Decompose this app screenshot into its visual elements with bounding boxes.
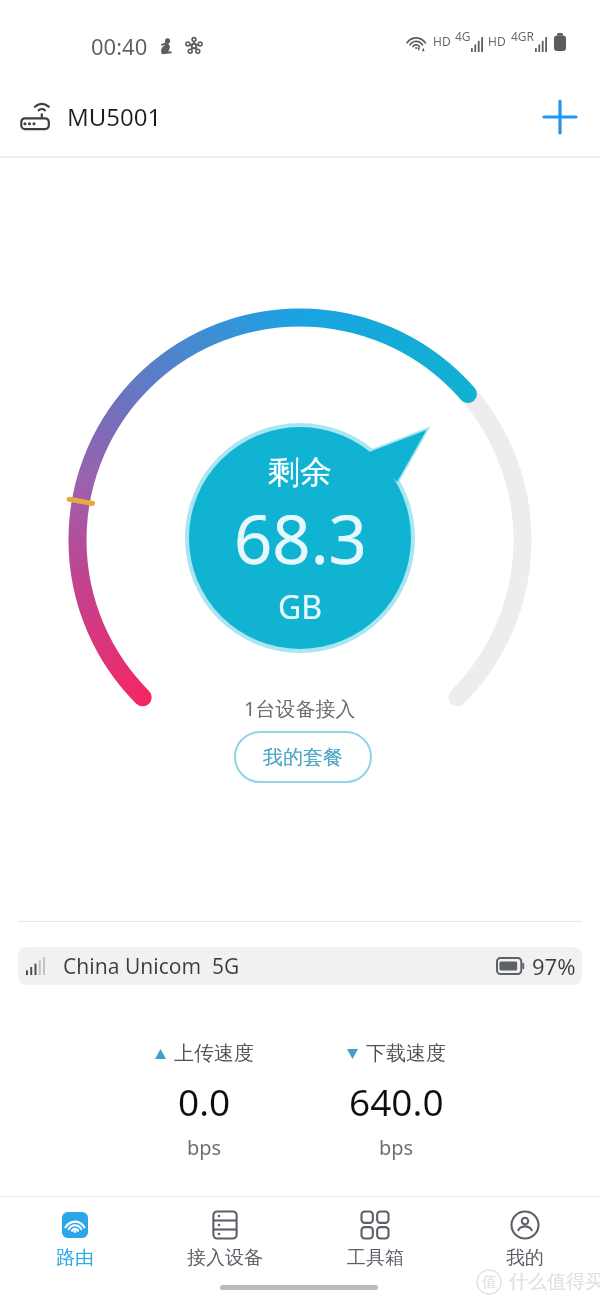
staticText: 剩余	[268, 452, 332, 492]
staticText: 值	[482, 1273, 497, 1292]
staticText: 下载速度	[366, 1041, 446, 1066]
staticText: 什么值得买	[509, 1270, 600, 1294]
staticText: 上传速度	[174, 1041, 254, 1066]
staticText: HD	[488, 33, 506, 49]
button[interactable]: 接入设备	[150, 1197, 300, 1270]
button[interactable]: 路由	[0, 1197, 150, 1270]
button[interactable]: 我的	[450, 1197, 600, 1270]
staticText: 4G	[455, 28, 471, 44]
staticText: 路由	[56, 1246, 94, 1270]
button[interactable]: 工具箱	[300, 1197, 450, 1270]
staticText: GB	[278, 585, 323, 629]
staticText: 我的套餐	[263, 745, 343, 770]
staticText: 97%	[532, 951, 576, 981]
button[interactable]: 我的套餐	[234, 731, 372, 783]
staticText: 工具箱	[347, 1246, 404, 1270]
staticText: 我的	[506, 1246, 544, 1270]
staticText: 4GR	[511, 28, 535, 44]
staticText: 0.0	[178, 1076, 231, 1126]
staticText: 68.3	[234, 492, 367, 583]
button[interactable]: Add device	[534, 91, 586, 143]
staticText: bps	[187, 1134, 222, 1161]
staticText: bps	[379, 1134, 414, 1161]
staticText: 00:40	[91, 31, 148, 61]
staticText: 640.0	[349, 1076, 444, 1126]
staticText: 接入设备	[187, 1246, 263, 1270]
staticText: 1台设备接入	[244, 695, 356, 722]
staticText: HD	[433, 33, 451, 49]
staticText: MU5001	[67, 100, 162, 133]
staticText: China Unicom 5G	[63, 952, 240, 981]
